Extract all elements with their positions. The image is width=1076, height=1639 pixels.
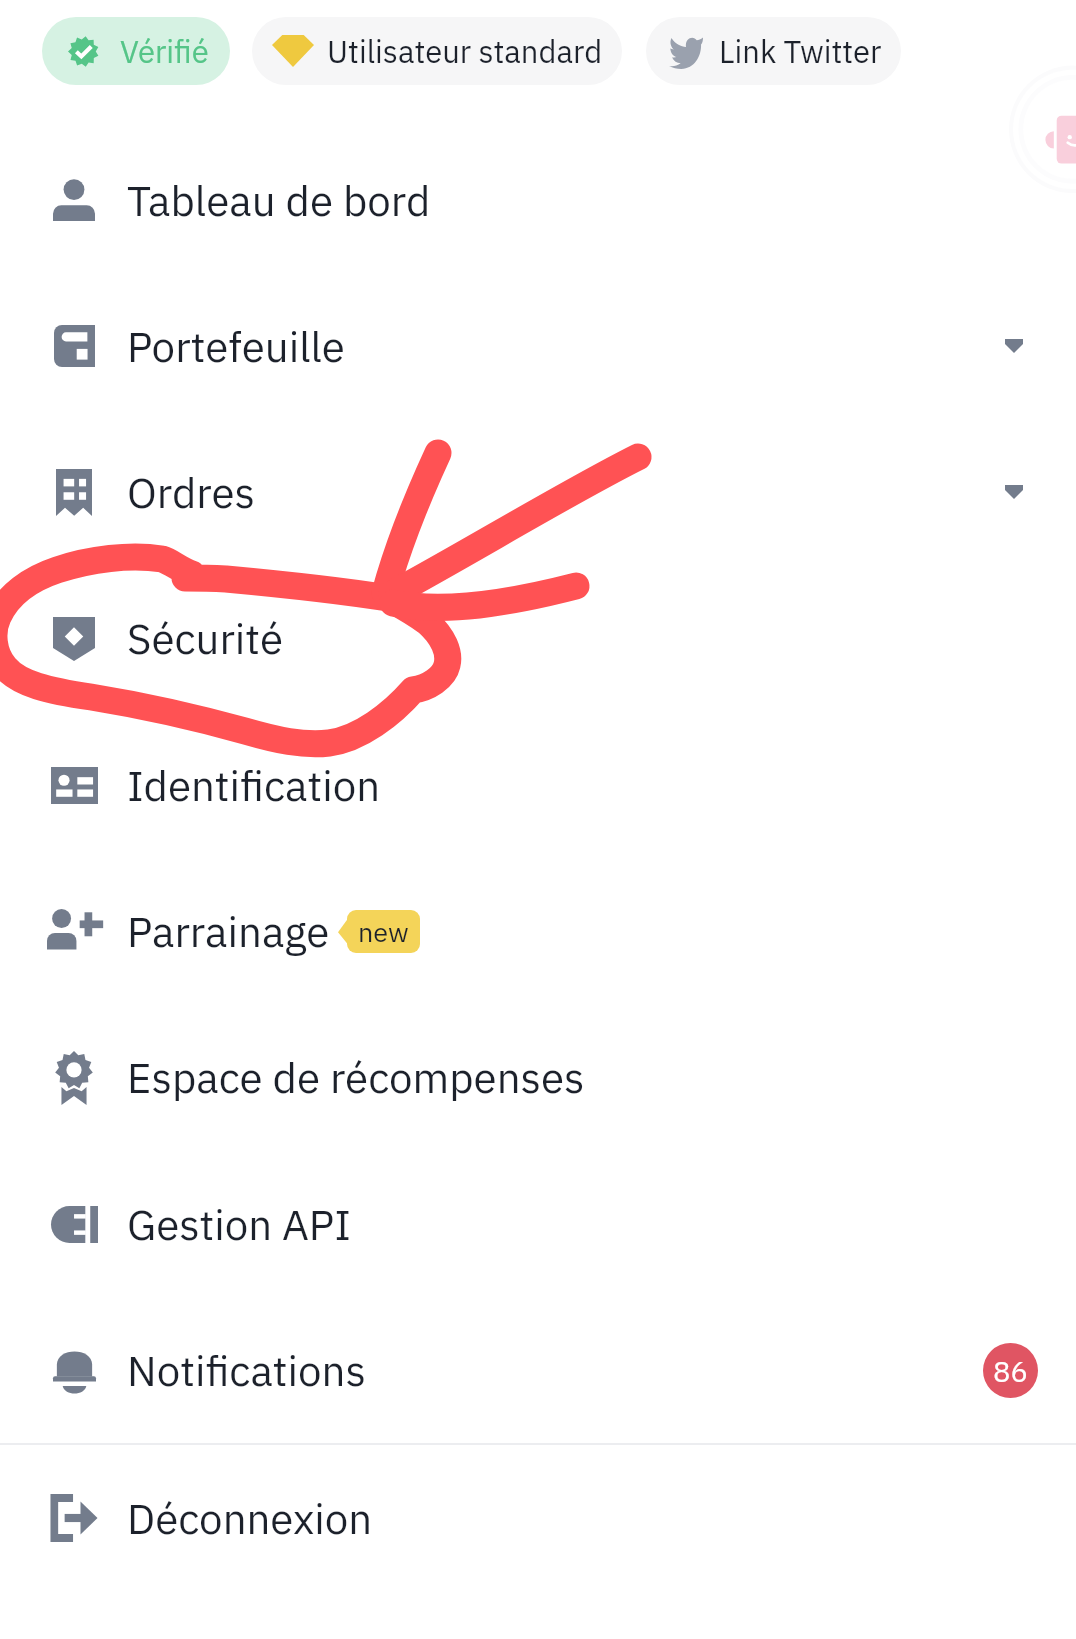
staticText: Portefeuille [127, 319, 345, 374]
button[interactable]: Link Twitter [646, 17, 901, 85]
button[interactable]: Gestion API [0, 1151, 1076, 1297]
button[interactable]: Déconnexion [0, 1445, 1076, 1591]
staticText: Vérifié [120, 31, 209, 71]
staticText: Ordres [127, 465, 255, 520]
staticText: Identification [127, 758, 381, 813]
button[interactable]: Tableau de bord [0, 127, 1076, 273]
staticText: Parrainage [127, 904, 330, 959]
button[interactable]: Expand Ordres [992, 470, 1036, 514]
staticText: Notifications [127, 1343, 366, 1398]
staticText: Espace de récompenses [127, 1050, 585, 1105]
button[interactable]: Espace de récompenses [0, 1004, 1076, 1151]
button[interactable]: Identification [0, 712, 1076, 858]
button[interactable]: Notifications [0, 1297, 1076, 1443]
button[interactable]: Expand Portefeuille [992, 324, 1036, 368]
staticText: 86 [993, 1352, 1028, 1390]
button[interactable]: Sécurité [0, 565, 1076, 712]
button[interactable]: Vérifié [42, 17, 230, 85]
staticText: Utilisateur standard [327, 31, 603, 71]
staticText: Déconnexion [127, 1491, 373, 1546]
button[interactable]: Parrainage [0, 858, 1076, 1004]
button[interactable]: Ordres [0, 419, 1076, 565]
staticText: Tableau de bord [127, 173, 431, 228]
button[interactable]: Utilisateur standard [252, 17, 622, 85]
staticText: Sécurité [127, 611, 283, 666]
button[interactable]: Portefeuille [0, 273, 1076, 419]
staticText: new [358, 914, 409, 949]
staticText: Gestion API [127, 1197, 352, 1252]
staticText: Link Twitter [719, 31, 882, 71]
